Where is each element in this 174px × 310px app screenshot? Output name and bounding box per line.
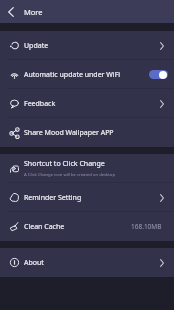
staticText: Shortcut to Click Change [24, 159, 105, 169]
button[interactable]: Toggle automatic update [149, 70, 168, 79]
button[interactable]: Update [0, 31, 174, 60]
staticText: Feedback [24, 99, 56, 109]
staticText: More [24, 7, 43, 17]
button[interactable]: About [0, 248, 174, 277]
staticText: 168.10MB [131, 222, 162, 231]
button[interactable]: Reminder Setting [0, 183, 174, 212]
staticText: Reminder Setting [24, 193, 82, 203]
button[interactable]: Share Mood Wallpaper APP [0, 118, 174, 147]
button[interactable]: Feedback [0, 89, 174, 118]
staticText: A Click Change icon will be created on d… [24, 172, 115, 178]
button[interactable]: Automatic update under WiFi [0, 60, 174, 89]
staticText: Automatic update under WiFi [24, 70, 149, 80]
staticText: Clean Cache [24, 222, 65, 232]
button[interactable]: Clean Cache [0, 212, 174, 241]
button[interactable]: Shortcut to Click Change [0, 154, 174, 183]
button[interactable]: Back [0, 0, 24, 23]
staticText: About [24, 258, 44, 268]
staticText: Share Mood Wallpaper APP [24, 128, 114, 138]
staticText: Update [24, 41, 49, 51]
